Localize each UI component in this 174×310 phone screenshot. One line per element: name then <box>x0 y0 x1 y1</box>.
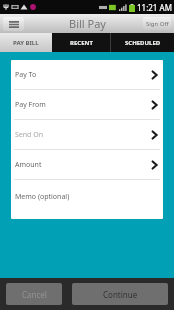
button[interactable]: Sign Off <box>143 17 171 30</box>
staticText: Cancel <box>22 289 47 300</box>
button[interactable]: Send On <box>11 120 163 149</box>
staticText: Send On <box>15 130 44 140</box>
button[interactable]: RECENT <box>52 33 110 52</box>
button[interactable]: Continue <box>72 283 168 305</box>
button[interactable]: Amount <box>11 150 163 179</box>
staticText: RECENT <box>70 39 93 47</box>
button[interactable]: SCHEDULED <box>111 33 174 52</box>
button[interactable]: Memo (optional) <box>11 180 163 219</box>
staticText: Pay From <box>15 100 46 110</box>
staticText: Pay To <box>15 70 37 80</box>
staticText: Sign Off <box>146 20 169 28</box>
staticText: Amount <box>15 160 42 170</box>
staticText: SCHEDULED <box>125 39 161 47</box>
staticText: Bill Pay <box>69 16 106 31</box>
button[interactable]: Pay From <box>11 90 163 119</box>
staticText: PAY BILL <box>13 39 39 47</box>
button[interactable]: Menu <box>3 17 24 31</box>
button[interactable]: Pay To <box>11 60 163 89</box>
staticText: 11:21 AM <box>137 2 172 13</box>
button[interactable]: Cancel <box>6 283 62 305</box>
staticText: Continue <box>103 289 138 300</box>
button[interactable]: PAY BILL <box>0 33 52 52</box>
staticText: Memo (optional) <box>15 192 70 202</box>
